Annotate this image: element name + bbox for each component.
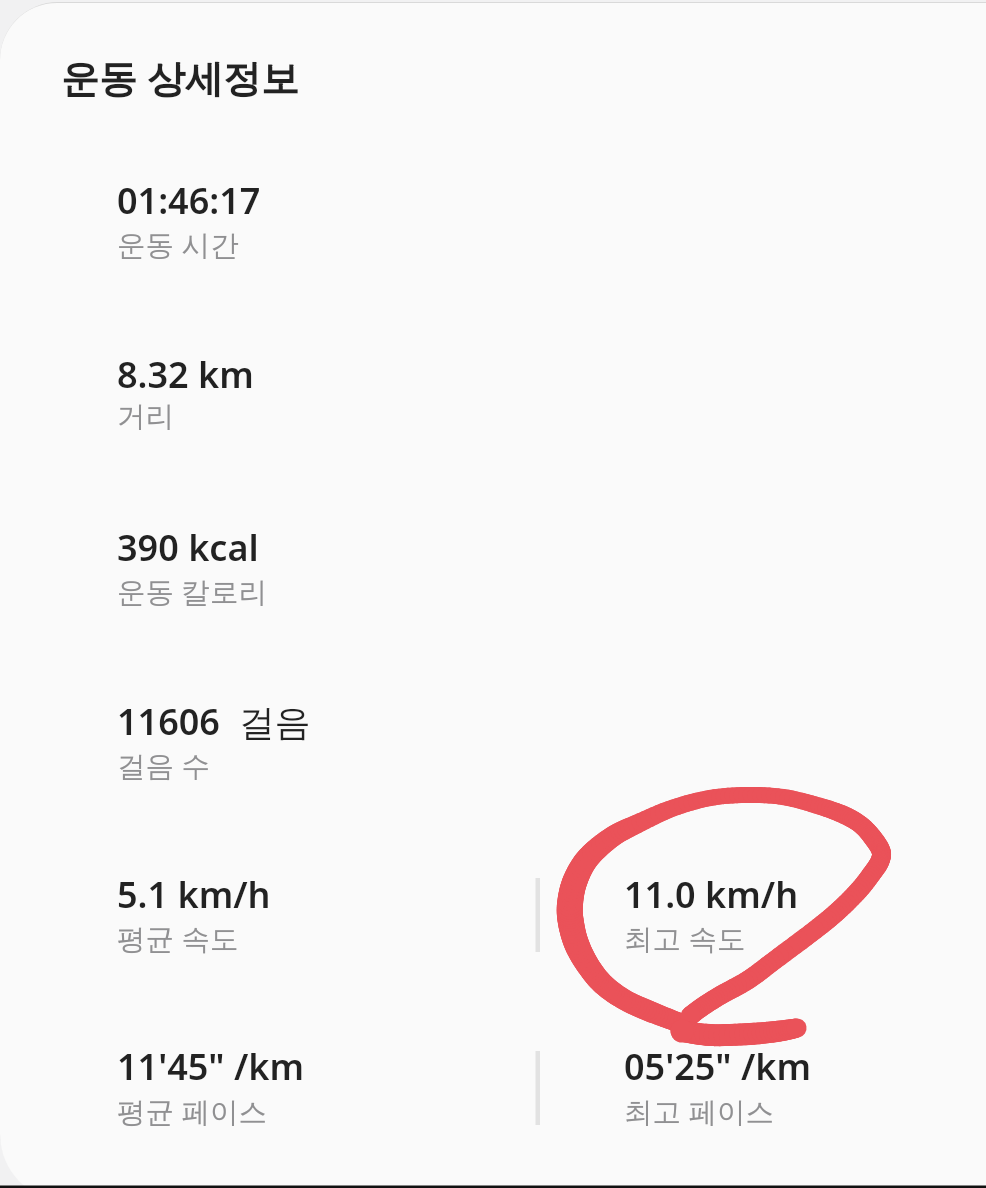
button[interactable]: 11'45" /km <box>117 1042 305 1091</box>
button[interactable]: 최고 페이스 <box>624 1092 774 1131</box>
staticText: 운동 상세정보 <box>61 51 299 103</box>
staticText: 8.32 km <box>117 350 254 399</box>
button[interactable]: 05'25" /km <box>624 1042 812 1091</box>
staticText: 11.0 km/h <box>624 870 799 919</box>
staticText: 최고 페이스 <box>624 1092 774 1131</box>
staticText: 걸음 수 <box>117 746 210 785</box>
other: Highlighted maximum speed <box>0 0 986 1188</box>
button[interactable]: 걸음 수 <box>117 746 210 785</box>
button[interactable]: 01:46:17 <box>117 176 261 225</box>
staticText: 최고 속도 <box>624 919 746 958</box>
button[interactable]: 거리 <box>117 399 174 435</box>
staticText: 05'25" /km <box>624 1042 812 1091</box>
button[interactable]: 운동 상세정보 <box>61 51 299 103</box>
button[interactable]: 11.0 km/h <box>624 870 799 919</box>
staticText: 11606 걸음 <box>117 697 311 746</box>
button[interactable]: 11606 걸음 <box>117 697 311 746</box>
button[interactable]: 평균 속도 <box>117 919 239 958</box>
button[interactable]: 운동 시간 <box>117 225 239 264</box>
staticText: 평균 속도 <box>117 919 239 958</box>
staticText: 5.1 km/h <box>117 870 271 919</box>
staticText: 평균 페이스 <box>117 1092 267 1131</box>
staticText: 11'45" /km <box>117 1042 305 1091</box>
staticText: 390 kcal <box>117 523 259 572</box>
button[interactable]: 최고 속도 <box>624 919 746 958</box>
staticText: 거리 <box>117 399 174 435</box>
button[interactable]: 평균 페이스 <box>117 1092 267 1131</box>
button[interactable]: 390 kcal <box>117 523 259 572</box>
staticText: 운동 시간 <box>117 225 239 264</box>
button[interactable]: 운동 칼로리 <box>117 572 267 611</box>
staticText: 운동 칼로리 <box>117 572 267 611</box>
button[interactable]: 5.1 km/h <box>117 870 271 919</box>
staticText: 01:46:17 <box>117 176 261 225</box>
button[interactable]: 8.32 km <box>117 350 254 399</box>
